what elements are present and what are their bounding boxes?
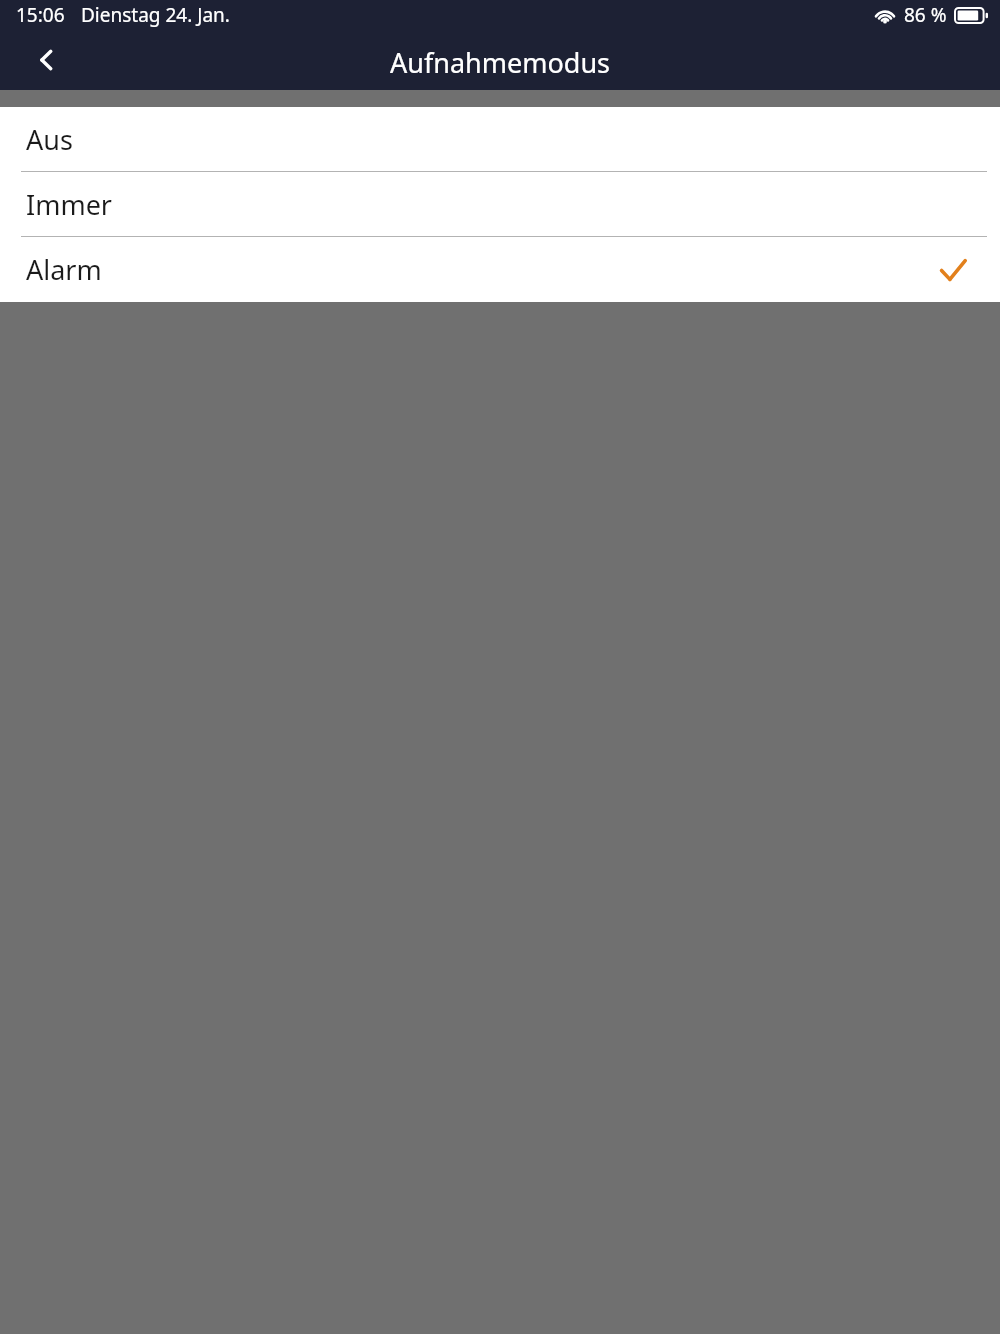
- button[interactable]: Aus: [0, 107, 1000, 172]
- staticText: 15:06: [16, 2, 65, 28]
- staticText: Dienstag 24. Jan.: [81, 2, 230, 28]
- staticText: 86 %: [904, 2, 947, 28]
- staticText: Aufnahmemodus: [0, 44, 1000, 81]
- button[interactable]: Immer: [0, 172, 1000, 237]
- staticText: Aus: [26, 121, 73, 158]
- button[interactable]: Alarm: [0, 237, 1000, 302]
- staticText: Immer: [26, 186, 113, 223]
- button[interactable]: Zurück: [18, 30, 78, 90]
- staticText: Alarm: [26, 251, 102, 288]
